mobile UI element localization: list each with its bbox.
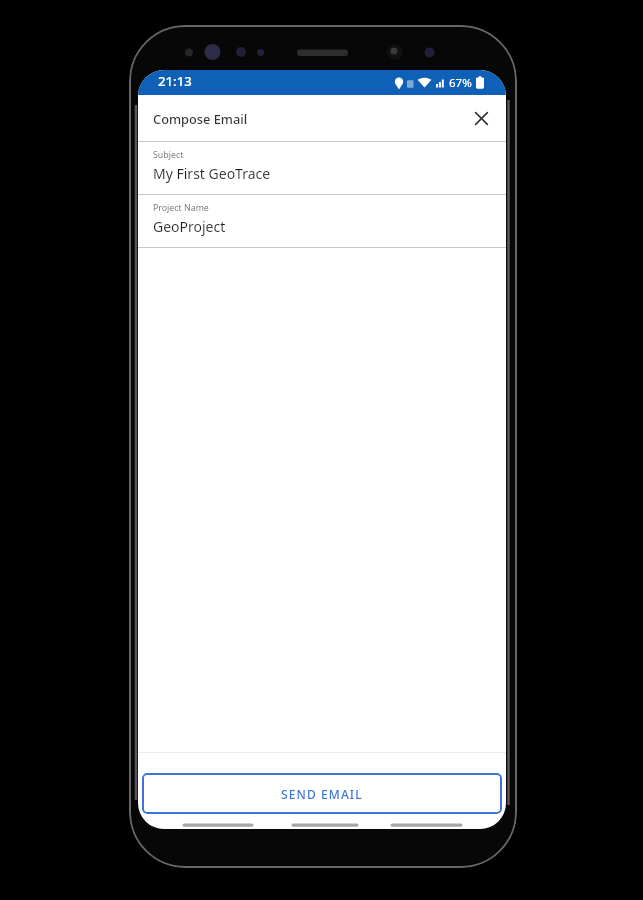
staticText: 67%: [449, 75, 472, 91]
staticText: Project Name: [153, 202, 209, 214]
staticText: Compose Email: [153, 110, 248, 127]
staticText: SEND EMAIL: [281, 786, 363, 802]
staticText: Subject: [153, 149, 184, 161]
button[interactable]: Project Name: [138, 195, 506, 247]
staticText: My First GeoTrace: [153, 164, 271, 183]
button[interactable]: Subject: [138, 142, 506, 194]
button[interactable]: [465, 102, 497, 134]
staticText: 21:13: [158, 72, 192, 90]
staticText: GeoProject: [153, 217, 226, 236]
button[interactable]: SEND EMAIL: [142, 773, 502, 814]
